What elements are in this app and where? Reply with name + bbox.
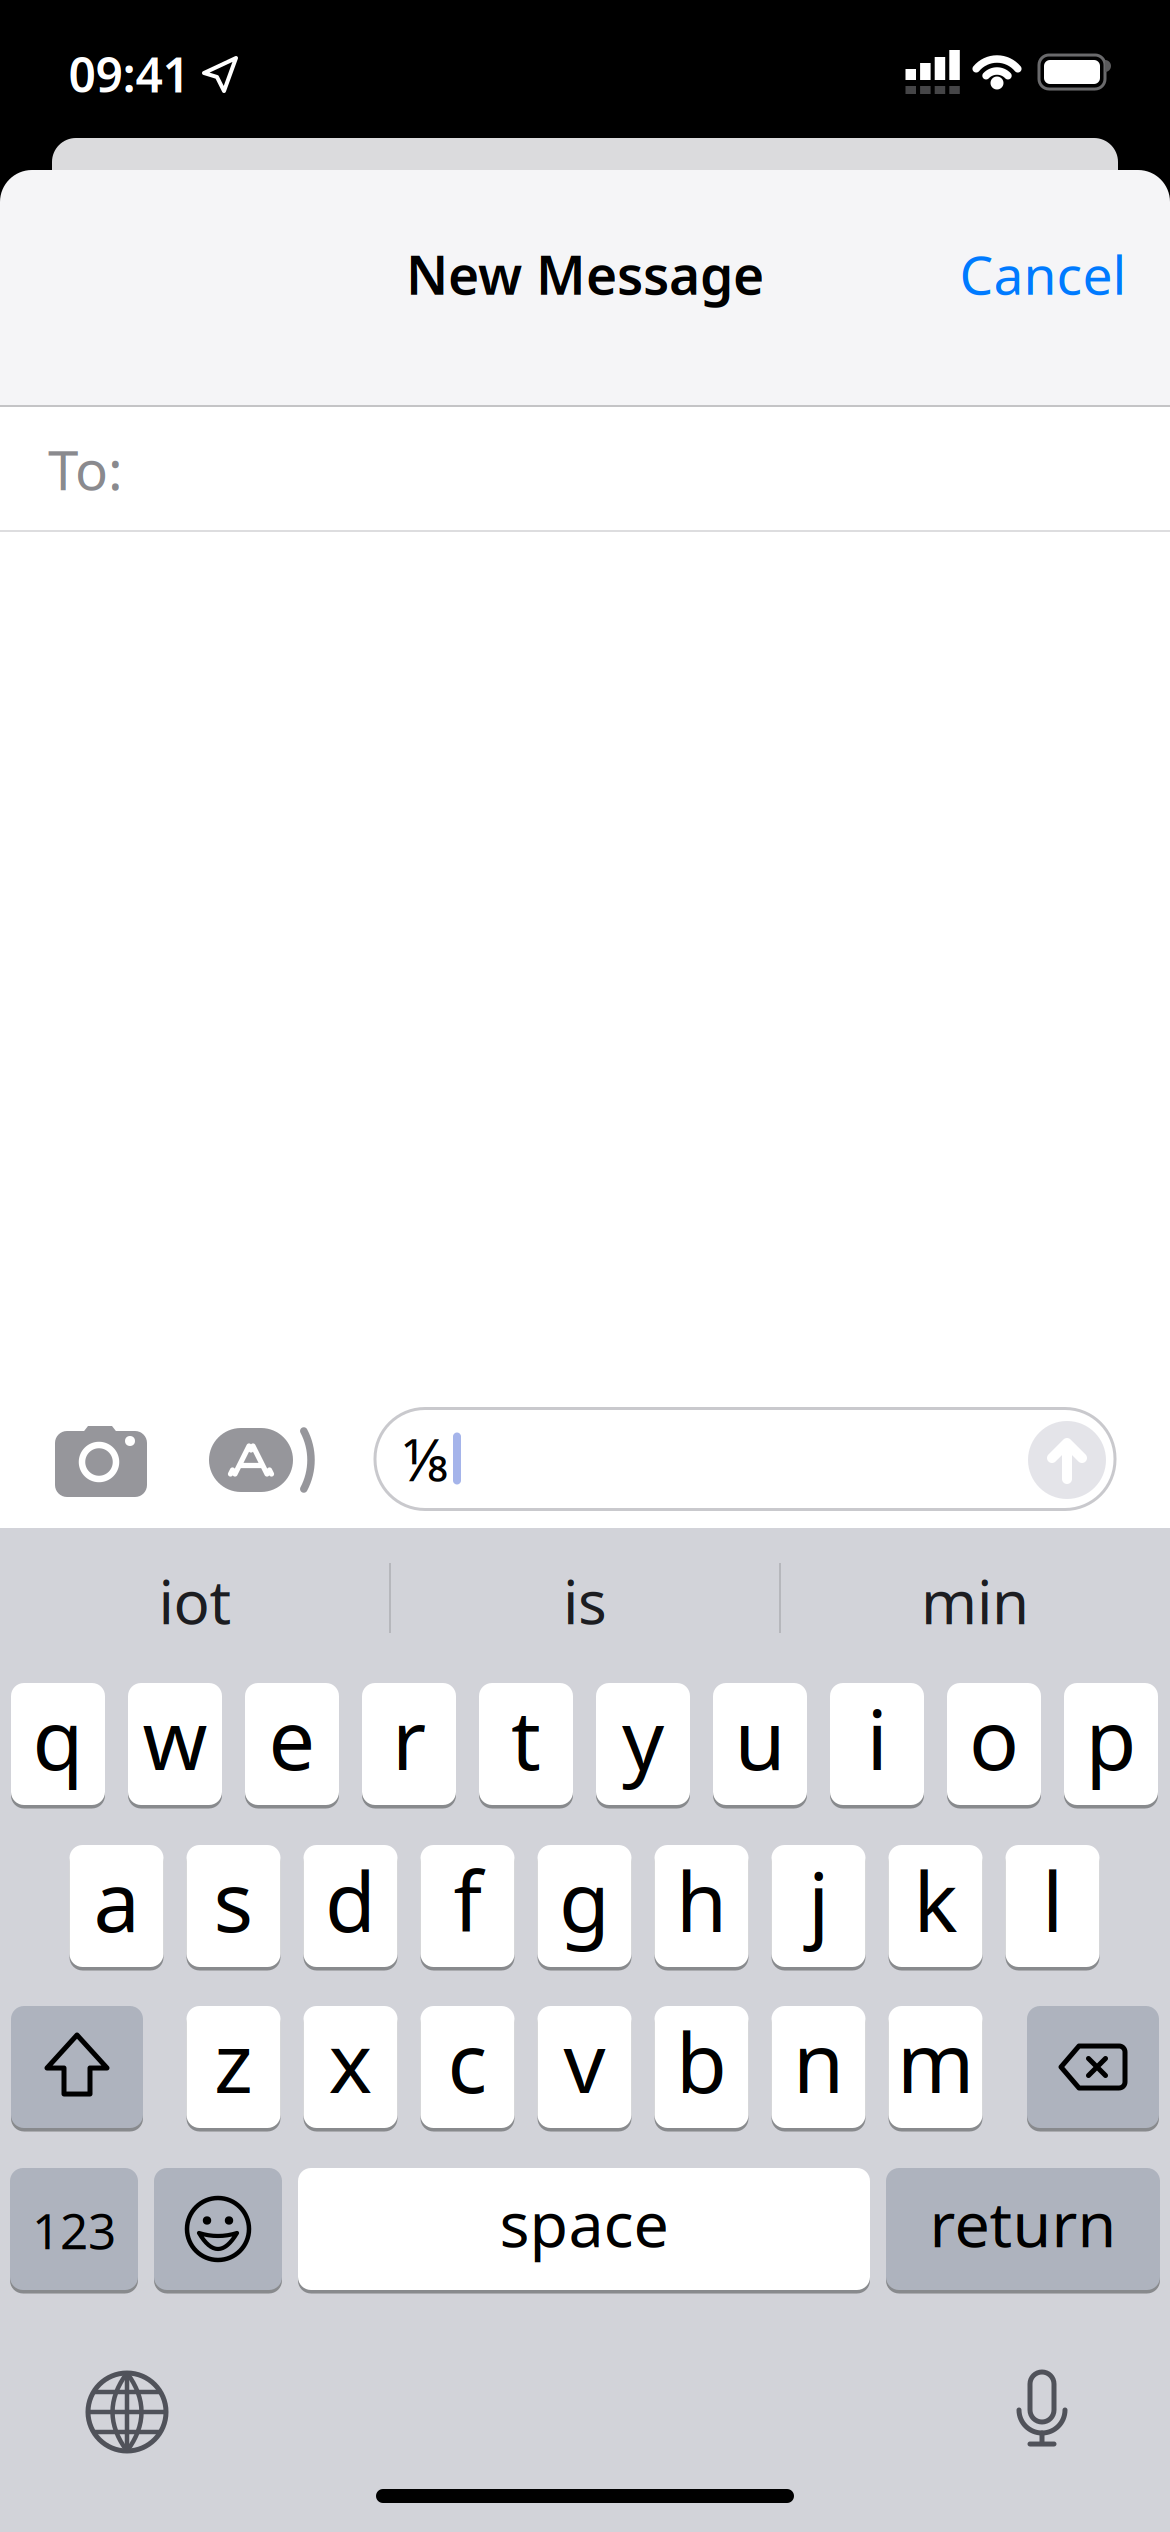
button[interactable]: h: [654, 1843, 748, 1969]
button[interactable]: Send: [1028, 1421, 1106, 1499]
button[interactable]: Cancel: [959, 224, 1126, 324]
button[interactable]: e: [245, 1681, 339, 1807]
staticText: p: [1085, 1683, 1136, 1793]
button[interactable]: a: [69, 1843, 163, 1969]
button[interactable]: f: [420, 1843, 514, 1969]
button[interactable]: q: [11, 1681, 105, 1807]
staticText: m: [897, 2006, 974, 2116]
button[interactable]: v: [537, 2004, 631, 2130]
button[interactable]: y: [596, 1681, 690, 1807]
staticText: k: [913, 1845, 957, 1955]
staticText: t: [511, 1683, 541, 1793]
button[interactable]: u: [713, 1681, 807, 1807]
button[interactable]: t: [479, 1681, 573, 1807]
staticText: g: [559, 1845, 610, 1955]
staticText: l: [1042, 1845, 1063, 1955]
button[interactable]: To: [0, 408, 1170, 530]
button[interactable]: z: [186, 2004, 280, 2130]
button[interactable]: k: [888, 1843, 982, 1969]
button[interactable]: d: [303, 1843, 397, 1969]
button[interactable]: x: [303, 2004, 397, 2130]
staticText: j: [808, 1845, 829, 1955]
staticText: is: [563, 1561, 607, 1641]
button[interactable]: Next keyboard: [85, 2370, 169, 2454]
button[interactable]: c: [420, 2004, 514, 2130]
staticText: q: [32, 1683, 83, 1793]
staticText: c: [447, 2006, 487, 2116]
button[interactable]: w: [128, 1681, 222, 1807]
staticText: r: [392, 1683, 426, 1793]
button[interactable]: b: [654, 2004, 748, 2130]
staticText: f: [453, 1845, 481, 1955]
staticText: u: [734, 1683, 785, 1793]
staticText: s: [213, 1845, 253, 1955]
staticText: v: [563, 2006, 605, 2116]
staticText: 123: [32, 2197, 116, 2263]
staticText: 09:41: [68, 42, 189, 106]
staticText: Cancel: [959, 239, 1126, 309]
button[interactable]: n: [771, 2004, 865, 2130]
staticText: y: [622, 1683, 664, 1793]
button[interactable]: 123: [10, 2166, 138, 2292]
button[interactable]: return: [886, 2166, 1160, 2292]
staticText: e: [268, 1683, 315, 1793]
button[interactable]: space: [298, 2166, 870, 2292]
button[interactable]: j: [771, 1843, 865, 1969]
staticText: min: [921, 1561, 1029, 1641]
staticText: h: [676, 1845, 727, 1955]
button[interactable]: g: [537, 1843, 631, 1969]
staticText: b: [676, 2006, 727, 2116]
button[interactable]: Delete: [1027, 2004, 1159, 2130]
staticText: d: [325, 1845, 376, 1955]
staticText: n: [793, 2006, 844, 2116]
button[interactable]: Shift: [11, 2004, 143, 2130]
staticText: o: [969, 1683, 1019, 1793]
button[interactable]: Emoji: [154, 2166, 282, 2292]
staticText: iot: [158, 1561, 231, 1641]
button[interactable]: i: [830, 1681, 924, 1807]
button[interactable]: min: [785, 1541, 1165, 1661]
staticText: New Message: [406, 239, 764, 309]
button[interactable]: o: [947, 1681, 1041, 1807]
button[interactable]: is: [395, 1541, 775, 1661]
button[interactable]: r: [362, 1681, 456, 1807]
button[interactable]: Dictate: [1017, 2370, 1067, 2450]
staticText: a: [93, 1845, 139, 1955]
staticText: return: [929, 2181, 1116, 2265]
button[interactable]: l: [1005, 1843, 1099, 1969]
staticText: space: [499, 2181, 668, 2265]
button[interactable]: Apps: [209, 1427, 319, 1493]
staticText: w: [142, 1683, 207, 1793]
staticText: ⅛: [402, 1419, 451, 1497]
staticText: z: [214, 2006, 253, 2116]
button[interactable]: Camera: [55, 1425, 147, 1497]
button[interactable]: s: [186, 1843, 280, 1969]
button[interactable]: iot: [5, 1541, 385, 1661]
staticText: x: [328, 2006, 372, 2116]
button[interactable]: p: [1064, 1681, 1158, 1807]
button[interactable]: Message: [375, 1408, 1115, 1509]
button[interactable]: m: [888, 2004, 982, 2130]
staticText: To:: [48, 433, 123, 505]
staticText: i: [866, 1683, 887, 1793]
